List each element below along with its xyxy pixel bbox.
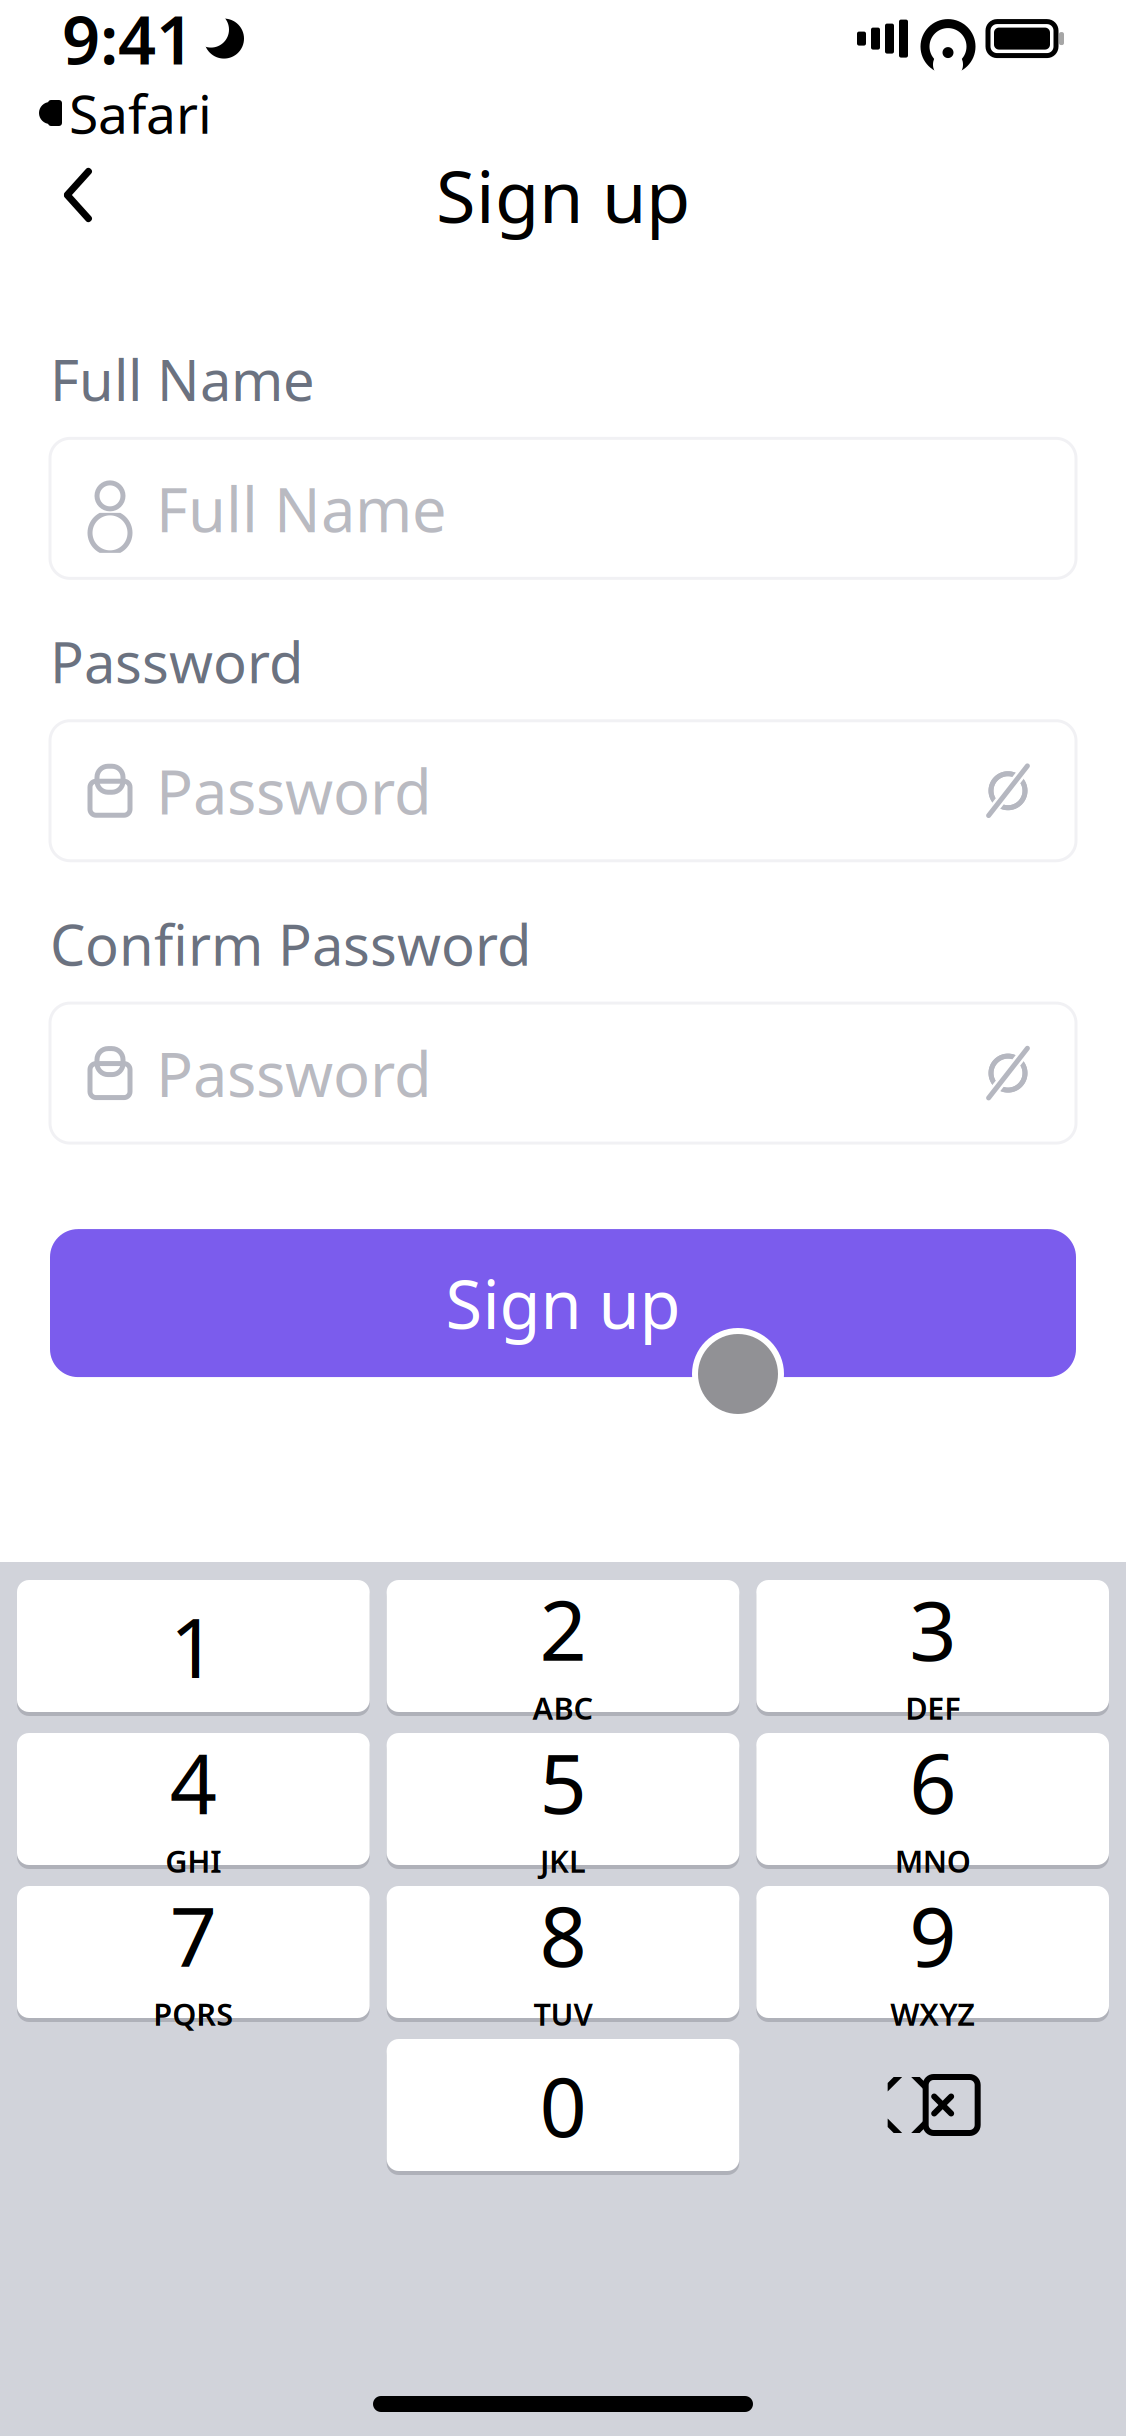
button[interactable]: 2 xyxy=(387,1578,739,1714)
staticText: Safari xyxy=(69,78,212,148)
staticText: Password xyxy=(50,624,303,699)
staticText: JKL xyxy=(540,1840,586,1881)
button[interactable]: Full Name xyxy=(50,438,1076,578)
button[interactable]: 1 xyxy=(17,1578,370,1714)
staticText: Full Name xyxy=(156,468,447,549)
staticText: 0 xyxy=(539,2050,586,2160)
staticText: 5 xyxy=(539,1727,586,1836)
button[interactable]: 6 xyxy=(756,1731,1109,1867)
button[interactable]: 8 xyxy=(387,1884,739,2020)
staticText: 6 xyxy=(909,1727,956,1836)
button[interactable]: Back xyxy=(40,157,116,233)
button[interactable]: Safari xyxy=(36,74,212,152)
staticText: 4 xyxy=(170,1727,217,1836)
staticText: 7 xyxy=(170,1880,217,1989)
button[interactable]: Delete xyxy=(756,2039,1109,2171)
staticText: PQRS xyxy=(153,1993,233,2034)
button[interactable]: 9 xyxy=(756,1884,1109,2020)
button[interactable]: 4 xyxy=(17,1731,370,1867)
staticText: ABC xyxy=(532,1687,593,1728)
staticText: 1 xyxy=(170,1591,217,1701)
staticText: 9:41 xyxy=(62,0,194,83)
button[interactable]: Sign up xyxy=(50,1229,1076,1377)
staticText: Password xyxy=(156,1032,432,1114)
button[interactable]: 3 xyxy=(756,1578,1109,1714)
button[interactable]: 0 xyxy=(387,2037,739,2173)
staticText: Confirm Password xyxy=(50,907,531,981)
button[interactable]: 7 xyxy=(17,1884,370,2020)
staticText: WXYZ xyxy=(890,1993,975,2034)
staticText: Password xyxy=(156,750,432,831)
staticText: MNO xyxy=(895,1840,971,1881)
staticText: 3 xyxy=(909,1574,956,1683)
staticText: GHI xyxy=(165,1840,221,1881)
button[interactable]: 5 xyxy=(387,1731,739,1867)
staticText: Sign up xyxy=(436,147,690,243)
staticText: DEF xyxy=(905,1687,960,1728)
staticText: 8 xyxy=(539,1880,586,1989)
button[interactable]: Password xyxy=(50,1003,1076,1143)
staticText: 2 xyxy=(539,1574,586,1683)
staticText: TUV xyxy=(533,1993,592,2034)
staticText: 9 xyxy=(909,1880,956,1989)
staticText: Full Name xyxy=(50,342,315,416)
staticText: Sign up xyxy=(445,1259,680,1347)
button[interactable]: Password xyxy=(50,721,1076,861)
